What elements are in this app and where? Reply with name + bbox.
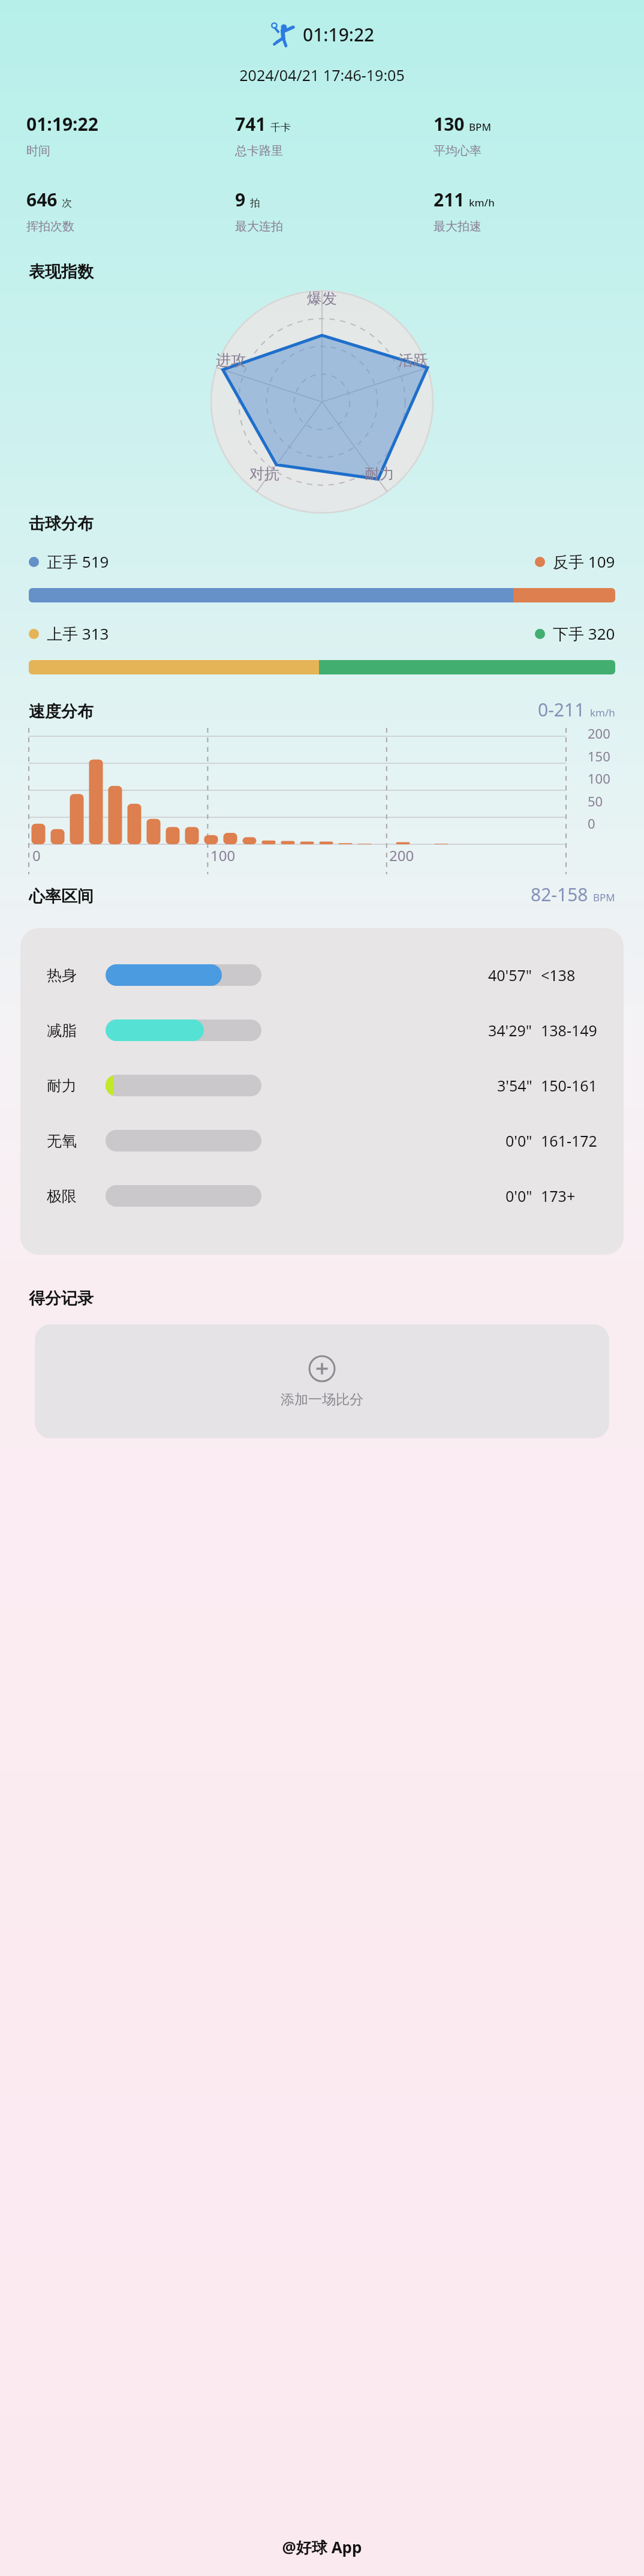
staticText: 拍: [250, 197, 260, 209]
staticText: 正手 519: [47, 551, 109, 572]
staticText: 01:19:22: [26, 112, 98, 136]
staticText: 100: [210, 845, 236, 865]
staticText: 反手 109: [553, 551, 615, 572]
staticText: 活跃: [398, 351, 428, 370]
staticText: <138: [541, 965, 576, 985]
staticText: @好球 App: [0, 2536, 644, 2558]
staticText: 挥拍次数: [26, 219, 74, 234]
staticText: 01:19:22: [303, 22, 375, 47]
staticText: 9: [235, 187, 246, 212]
staticText: 200: [588, 724, 610, 742]
staticText: 3'54": [497, 1075, 532, 1096]
staticText: 741: [235, 112, 266, 136]
staticText: 最大连拍: [235, 219, 283, 234]
staticText: 2024/04/21 17:46-19:05: [0, 65, 644, 85]
staticText: 50: [588, 792, 603, 810]
staticText: 心率区间: [29, 886, 94, 907]
staticText: 耐力: [47, 1076, 102, 1095]
staticText: 40'57": [488, 965, 532, 985]
staticText: 总卡路里: [235, 143, 283, 158]
staticText: 爆发: [307, 289, 337, 308]
staticText: 0: [32, 845, 41, 865]
staticText: BPM: [469, 120, 492, 134]
button[interactable]: 热身: [47, 953, 603, 997]
button[interactable]: 添加一场比分: [35, 1324, 609, 1438]
staticText: 对抗: [249, 464, 279, 483]
staticText: 最大拍速: [434, 219, 482, 234]
staticText: 速度分布: [29, 701, 94, 722]
staticText: 时间: [26, 143, 50, 158]
staticText: 无氧: [47, 1132, 102, 1150]
staticText: 138-149: [541, 1020, 597, 1040]
other: Badminton player: [269, 22, 294, 47]
button[interactable]: 极限: [47, 1174, 603, 1217]
staticText: 173+: [541, 1186, 576, 1206]
staticText: 161-172: [541, 1130, 597, 1151]
staticText: 上手 313: [47, 623, 109, 644]
staticText: 211: [434, 187, 465, 212]
staticText: 100: [588, 769, 610, 787]
staticText: 击球分布: [29, 514, 644, 534]
staticText: 进攻: [216, 351, 246, 370]
button[interactable]: 减脂: [47, 1009, 603, 1052]
staticText: 0'0": [505, 1186, 532, 1206]
staticText: 150-161: [541, 1075, 597, 1096]
button[interactable]: 无氧: [47, 1119, 603, 1162]
staticText: 646: [26, 187, 58, 212]
staticText: 0: [588, 814, 595, 832]
staticText: 耐力: [365, 464, 395, 483]
staticText: km/h: [469, 196, 495, 209]
button[interactable]: 耐力: [47, 1064, 603, 1107]
staticText: 千卡: [270, 121, 291, 134]
staticText: 减脂: [47, 1021, 102, 1040]
staticText: 34'29": [488, 1020, 532, 1040]
staticText: BPM: [593, 890, 615, 904]
staticText: 次: [62, 197, 72, 209]
staticText: 表现指数: [29, 262, 644, 282]
staticText: 82-158: [531, 882, 588, 907]
staticText: 极限: [47, 1187, 102, 1205]
staticText: 130: [434, 112, 465, 136]
staticText: km/h: [590, 706, 615, 719]
staticText: 0-211: [538, 697, 585, 722]
staticText: 平均心率: [434, 143, 482, 158]
staticText: 150: [588, 747, 610, 765]
staticText: 200: [389, 845, 414, 865]
staticText: 0'0": [505, 1130, 532, 1151]
staticText: 热身: [47, 966, 102, 985]
staticText: 下手 320: [553, 623, 615, 644]
staticText: 添加一场比分: [281, 1391, 363, 1408]
staticText: 得分记录: [29, 1288, 644, 1309]
